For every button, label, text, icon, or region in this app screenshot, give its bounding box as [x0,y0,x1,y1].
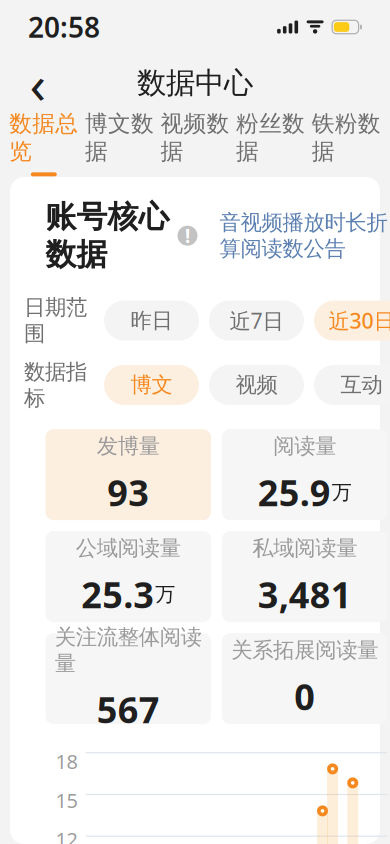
staticText: 粉丝数据 [236,110,305,165]
staticText: 公域阅读量 [76,535,181,561]
staticText: ‹ [29,48,46,118]
staticText: 数据总览 [9,110,78,165]
button[interactable]: 数据总览 [6,105,82,181]
staticText: 发博量 [97,433,160,459]
staticText: 日期范围 [24,294,87,347]
button[interactable]: 视频 [209,365,304,405]
staticText: 视频 [235,372,277,398]
staticText: 博文数据 [85,110,154,165]
button[interactable]: 私域阅读量 [222,531,387,622]
staticText: 3,481 [258,570,352,618]
button[interactable]: 阅读量 [222,429,387,520]
button[interactable]: 铁粉数据 [308,105,384,181]
button[interactable]: 关注流整体阅读量 [45,633,211,724]
staticText: 博文 [130,372,172,398]
staticText: 18 [55,748,77,774]
staticText: 私域阅读量 [252,535,357,561]
staticText: 昨日 [130,307,172,334]
button[interactable]: 互动 [314,365,390,405]
staticText: 25.9 [258,468,331,516]
button[interactable]: 音视频播放时长折算阅读数公告 [219,209,387,262]
staticText: 93 [107,468,149,516]
button[interactable]: 近30日 [314,300,390,340]
staticText: 关系拓展阅读量 [231,637,378,663]
button[interactable]: 昨日 [104,300,199,340]
staticText: 视频数据 [160,110,229,165]
staticText: 音视频播放时长折算阅读数公告 [219,209,387,262]
staticText: 阅读量 [273,433,336,459]
button[interactable]: 公域阅读量 [45,531,211,622]
staticText: 20:58 [28,8,100,46]
button[interactable]: 近7日 [209,300,304,340]
button[interactable]: 发博量 [45,429,211,520]
staticText: 近30日 [328,306,390,335]
staticText: 账号核心数据 [45,198,169,273]
button[interactable]: 博文数据 [82,105,157,181]
button[interactable]: 返回 [14,59,62,107]
staticText: 万 [155,582,175,607]
staticText: 铁粉数据 [312,110,381,165]
button[interactable]: 博文 [104,365,199,405]
staticText: ! [185,223,190,248]
staticText: 数据中心 [137,65,253,101]
staticText: 15 [55,787,77,813]
button[interactable]: 视频数据 [157,105,233,181]
staticText: 567 [97,685,160,733]
staticText: 数据指标 [24,359,87,411]
button[interactable]: 关系拓展阅读量 [222,633,387,724]
staticText: 12 [55,826,77,844]
staticText: 互动 [340,372,382,398]
staticText: 25.3 [81,570,154,618]
staticText: 关注流整体阅读量 [55,624,202,676]
staticText: 0 [294,672,315,720]
button[interactable]: 粉丝数据 [233,105,308,181]
staticText: 近7日 [229,306,283,335]
staticText: 万 [332,480,352,505]
